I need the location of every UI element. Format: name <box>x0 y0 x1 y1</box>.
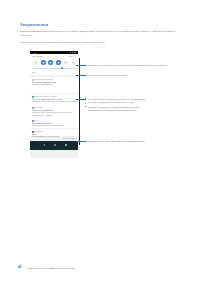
button[interactable]: Home <box>53 143 57 147</box>
button[interactable]: Back <box>42 143 46 147</box>
staticText: Нажмите для открытия Настроек. <box>86 73 128 76</box>
staticText: Системное уведомление <box>34 78 54 80</box>
button[interactable]: Google Play Маркет • сейчас <box>30 94 78 105</box>
staticText: Ещё <box>32 71 36 73</box>
button[interactable]: Системное уведомление <box>30 77 78 93</box>
button[interactable]: Location <box>56 60 61 65</box>
staticText: Для открытия панели уведомлений проведит… <box>20 40 106 43</box>
button[interactable]: Bluetooth <box>41 60 46 65</box>
staticText: 3 уведомления от приложений <box>32 135 60 137</box>
staticText: Мы разослали вам несколько встреч <box>32 124 65 126</box>
staticText: Почта <box>34 119 39 121</box>
staticText: Есть Работа для вас <box>32 122 52 125</box>
staticText: Доступно обновление системы <box>32 98 63 101</box>
button[interactable]: Recents <box>64 143 68 147</box>
button[interactable]: Настройки <box>30 105 78 118</box>
staticText: Заголовок уведомления <box>32 81 57 84</box>
staticText: 40 <box>18 265 22 269</box>
staticText: Ещё <box>32 133 37 136</box>
button[interactable]: Системное <box>30 129 78 136</box>
staticText: 00:00 <box>33 52 37 54</box>
staticText: Уведомления <box>20 22 49 27</box>
staticText: Знакомство с интерфейсом устройства <box>27 266 75 269</box>
staticText: Google Play Маркет • сейчас <box>34 95 57 97</box>
staticText: 14:25 <box>68 55 73 57</box>
staticText: Важные уведомления отображаются на панел… <box>20 29 176 32</box>
button[interactable]: ПОДКЛЮЧИТЬ <box>32 114 44 116</box>
button[interactable]: Data <box>48 60 53 65</box>
staticText: Нажмите на действующее уведомление для о… <box>88 105 140 112</box>
staticText: Новый Wi-Fi доступен <box>32 109 54 112</box>
staticText: Настройки <box>34 106 43 108</box>
staticText: Чтв, 28 мар <box>32 55 42 57</box>
staticText: Нажмите здесь для удаления всех уведомле… <box>86 139 146 142</box>
staticText: Перетащите ползунок на панели для регули… <box>86 63 168 66</box>
button[interactable]: ОЧИСТИТЬ ВСЕ <box>63 137 76 139</box>
staticText: системой. <box>20 33 33 36</box>
staticText: Для детального просмотра всего окна пров… <box>88 97 146 104</box>
button[interactable]: Wi-Fi <box>33 60 38 65</box>
staticText: Системное <box>34 130 43 132</box>
staticText: Нажмите, чтобы загрузить и установить об… <box>32 100 78 102</box>
button[interactable]: ОТМЕНА <box>46 114 53 116</box>
staticText: ПОДКЛЮЧИТЬ <box>32 114 44 116</box>
staticText: ОТМЕНА <box>46 114 53 116</box>
button[interactable]: Rotate <box>71 60 76 65</box>
staticText: ОЧИСТИТЬ ВСЕ <box>63 137 76 139</box>
staticText: описание уведомления <box>32 83 53 85</box>
staticText: Нажмите чтобы просмотреть доступные сети <box>32 111 72 113</box>
button[interactable]: Flashlight <box>63 60 68 65</box>
button[interactable]: Почта <box>30 118 78 128</box>
